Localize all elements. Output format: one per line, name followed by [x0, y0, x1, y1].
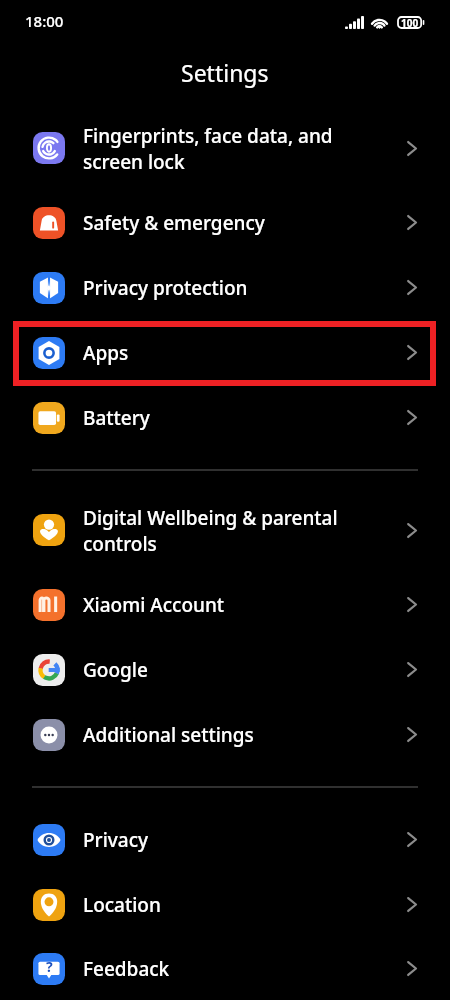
- button[interactable]: Additional settings: [0, 702, 450, 767]
- staticText: Safety & emergency: [83, 210, 345, 236]
- button[interactable]: Privacy: [0, 807, 450, 872]
- staticText: 100: [401, 16, 419, 29]
- staticText: Fingerprints, face data, and screen lock: [83, 123, 345, 174]
- staticText: Apps: [83, 340, 345, 366]
- button[interactable]: Digital Wellbeing & parental controls: [0, 492, 450, 572]
- button[interactable]: Privacy protection: [0, 255, 450, 320]
- staticText: Google: [83, 657, 345, 683]
- button[interactable]: Apps: [0, 320, 450, 385]
- staticText: 18:00: [25, 11, 64, 31]
- button[interactable]: Location: [0, 872, 450, 937]
- button[interactable]: Fingerprints, face data, and screen lock: [0, 110, 450, 190]
- button[interactable]: ?: [0, 937, 450, 1000]
- staticText: Additional settings: [83, 722, 345, 748]
- staticText: Privacy protection: [83, 275, 345, 301]
- button[interactable]: Google: [0, 637, 450, 702]
- button[interactable]: Battery: [0, 385, 450, 450]
- staticText: Location: [83, 892, 345, 918]
- staticText: Xiaomi Account: [83, 592, 345, 618]
- staticText: ?: [46, 957, 53, 976]
- button[interactable]: Safety & emergency: [0, 190, 450, 255]
- staticText: Feedback: [83, 956, 345, 982]
- button[interactable]: Xiaomi Account: [0, 572, 450, 637]
- staticText: Digital Wellbeing & parental controls: [83, 505, 345, 556]
- staticText: Privacy: [83, 827, 345, 853]
- staticText: Settings: [181, 57, 269, 88]
- staticText: Battery: [83, 405, 345, 431]
